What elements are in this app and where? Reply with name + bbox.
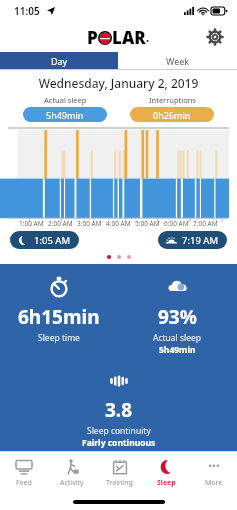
staticText: 3:00 AM [77, 219, 102, 228]
staticText: Day [51, 55, 68, 67]
staticText: Sleep time [38, 332, 80, 344]
button[interactable]: 1:05 AM [18, 231, 71, 249]
button[interactable]: More [190, 452, 237, 494]
staticText: 6h15min [18, 304, 100, 330]
staticText: Sleep continuity [87, 425, 151, 437]
staticText: 1:05 AM [34, 234, 71, 247]
staticText: 5:00 AM [135, 219, 160, 228]
staticText: 1:00 AM [19, 219, 44, 228]
button[interactable]: 7:19 AM [166, 231, 219, 249]
staticText: Activity [60, 478, 84, 488]
staticText: Actual sleep [153, 332, 202, 344]
staticText: 5h49min [159, 344, 196, 356]
staticText: More [205, 478, 223, 488]
staticText: 5h49min [46, 109, 84, 121]
staticText: 0h26min [153, 109, 191, 121]
button[interactable]: Settings [203, 25, 227, 49]
button[interactable]: Week [118, 52, 237, 69]
staticText: 11:05 [14, 4, 40, 18]
button[interactable]: Training [96, 452, 143, 494]
staticText: Interruptions [149, 95, 196, 105]
staticText: LAR [112, 26, 146, 49]
button[interactable]: 0h26min [130, 107, 214, 122]
button[interactable]: Day [0, 52, 118, 69]
staticText: Feed [16, 478, 32, 488]
button[interactable]: Feed [0, 452, 48, 494]
staticText: . [146, 30, 150, 45]
button[interactable]: Activity [48, 452, 96, 494]
staticText: Actual sleep [44, 95, 87, 105]
staticText: Fairly continuous [82, 437, 156, 449]
staticText: 7:19 AM [182, 234, 219, 247]
staticText: Week [166, 55, 190, 67]
staticText: 6:00 AM [164, 219, 189, 228]
button[interactable]: Sleep [143, 452, 190, 494]
staticText: Wednesday, January 2, 2019 [0, 75, 237, 91]
staticText: 7:00 AM [193, 219, 218, 228]
staticText: 3.8 [105, 397, 133, 423]
staticText: 93% [158, 304, 197, 330]
staticText: 2:00 AM [48, 219, 73, 228]
staticText: P [87, 26, 98, 49]
button[interactable]: 5h49min [23, 107, 107, 122]
staticText: 4:00 AM [106, 219, 131, 228]
staticText: Sleep [157, 478, 176, 488]
staticText: Training [106, 478, 133, 488]
